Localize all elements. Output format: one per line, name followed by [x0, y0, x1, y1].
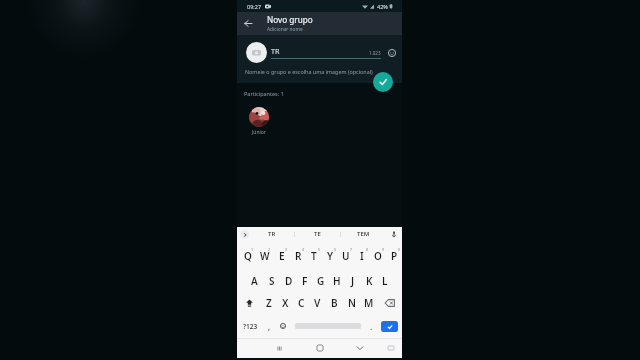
- button[interactable]: Home: [300, 338, 340, 358]
- staticText: C: [298, 296, 305, 310]
- button[interactable]: Confirm: [373, 72, 393, 92]
- button[interactable]: Hide keyboard: [340, 338, 380, 358]
- staticText: O: [374, 249, 382, 263]
- staticText: TEM: [357, 230, 370, 238]
- button[interactable]: U: [338, 245, 354, 267]
- button[interactable]: Shift: [237, 292, 261, 314]
- button[interactable]: O: [370, 245, 386, 267]
- staticText: ,: [268, 321, 271, 332]
- staticText: I: [360, 249, 364, 263]
- staticText: W: [260, 249, 270, 263]
- staticText: E: [279, 249, 285, 263]
- button[interactable]: L: [377, 270, 393, 292]
- staticText: A: [251, 274, 258, 288]
- staticText: M: [364, 296, 374, 310]
- button[interactable]: E: [273, 245, 290, 267]
- staticText: S: [269, 274, 275, 288]
- staticText: H: [333, 274, 341, 288]
- button[interactable]: X: [277, 292, 293, 314]
- staticText: N: [348, 296, 356, 310]
- staticText: F: [302, 274, 308, 288]
- staticText: G: [317, 274, 325, 288]
- button[interactable]: Space: [290, 315, 365, 337]
- button[interactable]: Emoji keyboard: [276, 315, 290, 337]
- staticText: 0: [398, 247, 401, 252]
- staticText: 09:27: [247, 3, 262, 10]
- button[interactable]: G: [313, 270, 329, 292]
- staticText: 4: [302, 247, 305, 252]
- staticText: L: [382, 274, 388, 288]
- button[interactable]: Emoji: [388, 49, 396, 57]
- staticText: TE: [314, 230, 321, 238]
- button[interactable]: Y: [322, 245, 338, 267]
- button[interactable]: Recents: [259, 338, 300, 358]
- button[interactable]: TR: [249, 227, 294, 241]
- staticText: TR: [271, 46, 280, 56]
- button[interactable]: Backspace: [377, 292, 402, 314]
- staticText: 8: [366, 247, 369, 252]
- staticText: Júnior: [252, 129, 266, 136]
- button[interactable]: Júnior: [249, 107, 269, 127]
- staticText: 6: [334, 247, 337, 252]
- button[interactable]: TEM: [341, 227, 386, 241]
- staticText: TR: [268, 230, 276, 238]
- staticText: 3: [285, 247, 288, 252]
- staticText: .: [370, 321, 373, 332]
- button[interactable]: Back: [237, 12, 259, 35]
- staticText: R: [295, 249, 302, 263]
- staticText: 9: [382, 247, 385, 252]
- button[interactable]: M: [360, 292, 377, 314]
- staticText: P: [391, 249, 398, 263]
- button[interactable]: C: [293, 292, 309, 314]
- button[interactable]: A: [246, 270, 263, 292]
- staticText: 5: [318, 247, 321, 252]
- button[interactable]: T: [306, 245, 322, 267]
- button[interactable]: Voice input: [386, 227, 402, 241]
- button[interactable]: V: [309, 292, 326, 314]
- staticText: X: [282, 296, 289, 310]
- staticText: U: [342, 249, 350, 263]
- button[interactable]: K: [361, 270, 377, 292]
- button[interactable]: Keyboard switch: [380, 338, 402, 358]
- staticText: Y: [327, 249, 334, 263]
- staticText: Adicionar nome: [267, 26, 303, 33]
- staticText: Z: [266, 296, 272, 310]
- button[interactable]: ?123: [237, 315, 263, 337]
- button[interactable]: B: [326, 292, 343, 314]
- button[interactable]: F: [297, 270, 313, 292]
- button[interactable]: P: [386, 245, 402, 267]
- button[interactable]: S: [263, 270, 280, 292]
- button[interactable]: N: [343, 292, 360, 314]
- staticText: B: [331, 296, 338, 310]
- button[interactable]: .: [365, 315, 378, 337]
- staticText: 1.023: [369, 50, 381, 56]
- staticText: D: [285, 274, 293, 288]
- staticText: 1: [251, 247, 254, 252]
- staticText: 42%: [377, 3, 388, 10]
- button[interactable]: Z: [261, 292, 277, 314]
- button[interactable]: Add group photo: [246, 42, 267, 63]
- button[interactable]: R: [290, 245, 306, 267]
- staticText: K: [366, 274, 373, 288]
- button[interactable]: H: [329, 270, 345, 292]
- button[interactable]: Enter: [381, 321, 398, 332]
- button[interactable]: ,: [263, 315, 276, 337]
- button[interactable]: D: [280, 270, 297, 292]
- staticText: Novo grupo: [267, 14, 313, 25]
- staticText: Nomeie o grupo e escolha uma imagem (opc…: [245, 68, 373, 75]
- staticText: 7: [350, 247, 353, 252]
- staticText: V: [314, 296, 321, 310]
- staticText: Q: [244, 249, 252, 263]
- button[interactable]: W: [256, 245, 273, 267]
- button[interactable]: I: [354, 245, 370, 267]
- staticText: Participantes: 1: [244, 90, 284, 97]
- button[interactable]: Expand toolbar: [240, 230, 249, 239]
- staticText: ?123: [243, 322, 258, 331]
- staticText: 2: [268, 247, 271, 252]
- staticText: J: [351, 274, 355, 288]
- button[interactable]: Q: [239, 245, 256, 267]
- staticText: T: [311, 249, 317, 263]
- button[interactable]: TE: [295, 227, 340, 241]
- button[interactable]: J: [345, 270, 361, 292]
